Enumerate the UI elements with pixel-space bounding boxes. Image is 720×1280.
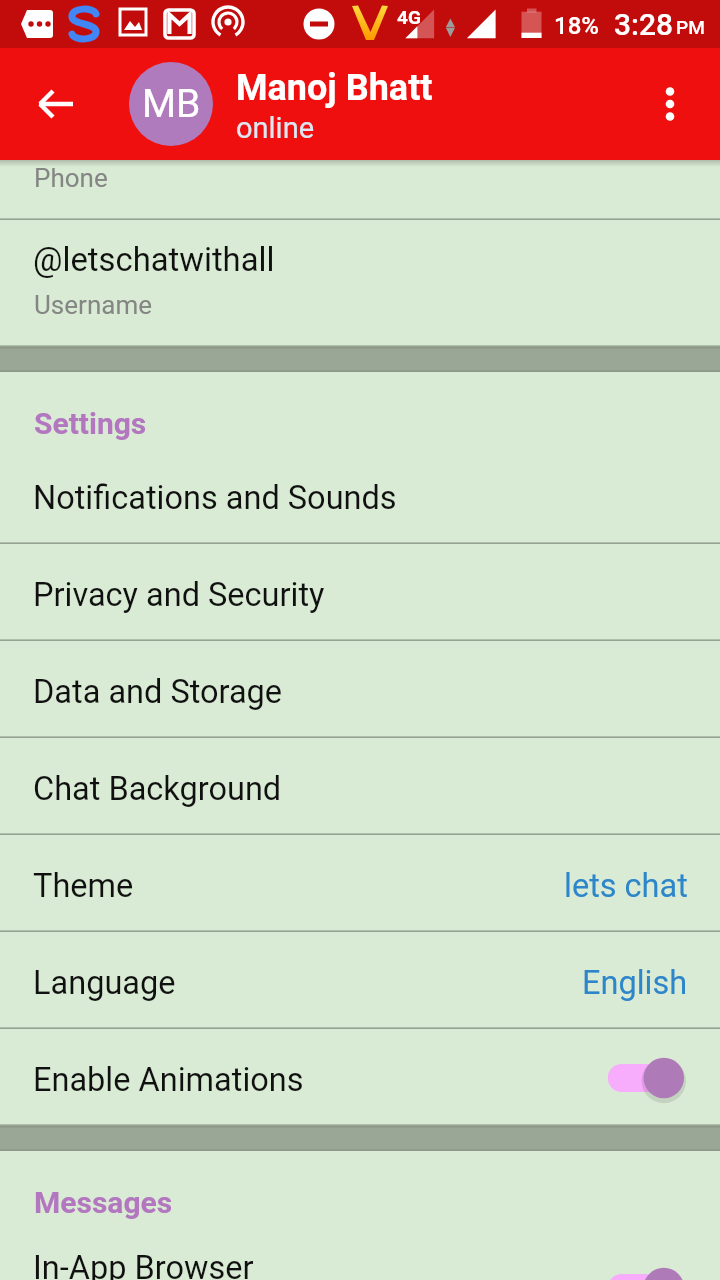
staticText: Phone <box>34 163 108 193</box>
staticText: online <box>236 111 315 145</box>
staticText: Language <box>33 964 176 1002</box>
staticText: 3:28 <box>614 7 674 42</box>
button[interactable]: In-App Browser <box>0 1226 720 1280</box>
button[interactable]: Chat Background <box>0 738 720 835</box>
staticText: MB <box>142 81 201 127</box>
staticText: 4G <box>397 6 421 28</box>
staticText: lets chat <box>564 867 688 905</box>
button[interactable]: Theme <box>0 835 720 932</box>
staticText: Enable Animations <box>33 1061 304 1099</box>
button[interactable]: Language <box>0 932 720 1029</box>
staticText: Messages <box>34 1185 173 1220</box>
staticText: Theme <box>33 867 134 905</box>
staticText: English <box>582 964 688 1002</box>
button[interactable]: Data and Storage <box>0 641 720 738</box>
staticText: Notifications and Sounds <box>33 479 397 517</box>
button[interactable]: +91 95555 55555 <box>0 93 720 220</box>
staticText: +91 95555 55555 <box>33 114 290 152</box>
other: In-App Browser <box>594 1263 690 1280</box>
staticText: In-App Browser <box>33 1249 254 1280</box>
staticText: Privacy and Security <box>33 576 325 614</box>
button[interactable]: Enable Animations <box>0 1029 720 1126</box>
staticText: Data and Storage <box>33 673 283 711</box>
button[interactable]: MB <box>129 62 213 146</box>
staticText: Username <box>34 290 152 320</box>
button[interactable]: @letschatwithall <box>0 220 720 347</box>
staticText: Manoj Bhatt <box>236 67 433 109</box>
button[interactable]: Notifications and Sounds <box>0 447 720 544</box>
button[interactable]: Privacy and Security <box>0 544 720 641</box>
staticText: PM <box>676 16 705 38</box>
button[interactable]: Back <box>26 74 86 134</box>
button[interactable]: More options <box>640 74 700 134</box>
staticText: Settings <box>34 406 147 441</box>
staticText: Chat Background <box>33 770 282 808</box>
staticText: @letschatwithall <box>33 241 275 279</box>
other: Enable Animations <box>594 1053 690 1103</box>
staticText: 18% <box>554 12 599 40</box>
